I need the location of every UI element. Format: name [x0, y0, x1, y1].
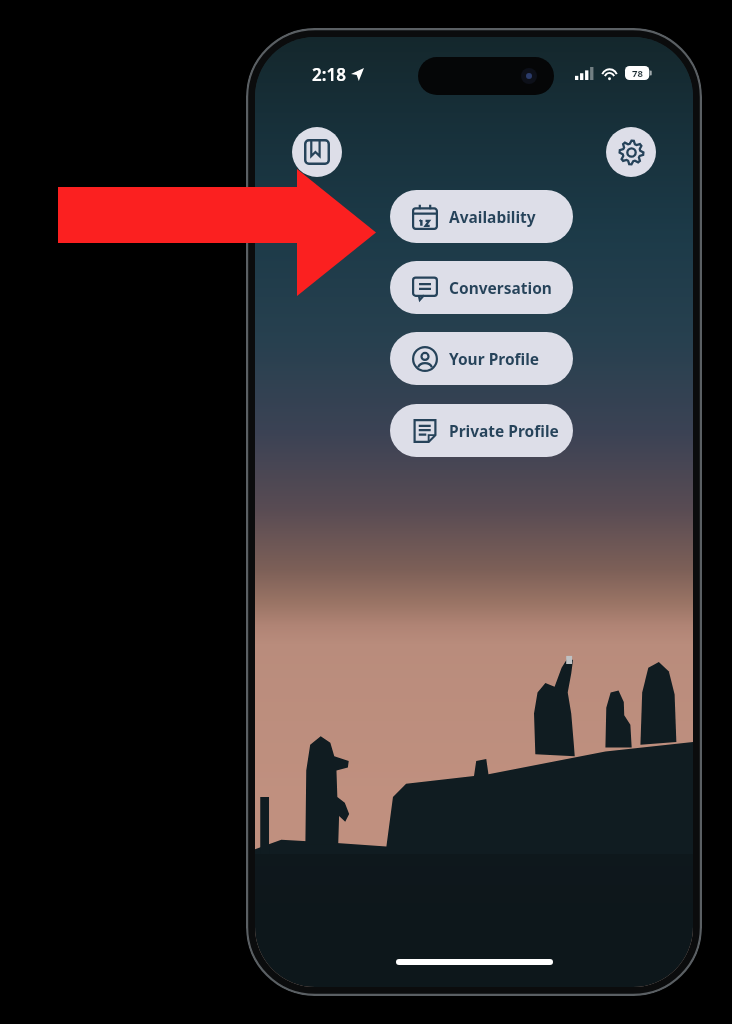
button[interactable]: Saved — [292, 127, 342, 177]
staticText: Conversation — [449, 277, 552, 298]
staticText: Private Profile — [449, 420, 559, 441]
button[interactable]: Conversation — [390, 261, 573, 314]
staticText: 78 — [632, 67, 643, 80]
button[interactable]: Your Profile — [390, 332, 573, 385]
button[interactable]: Private Profile — [390, 404, 573, 457]
button[interactable]: Settings — [606, 127, 656, 177]
staticText: Availability — [449, 206, 536, 227]
staticText: 2:18 — [312, 63, 346, 86]
button[interactable]: Availability — [390, 190, 573, 243]
staticText: Your Profile — [449, 348, 540, 369]
